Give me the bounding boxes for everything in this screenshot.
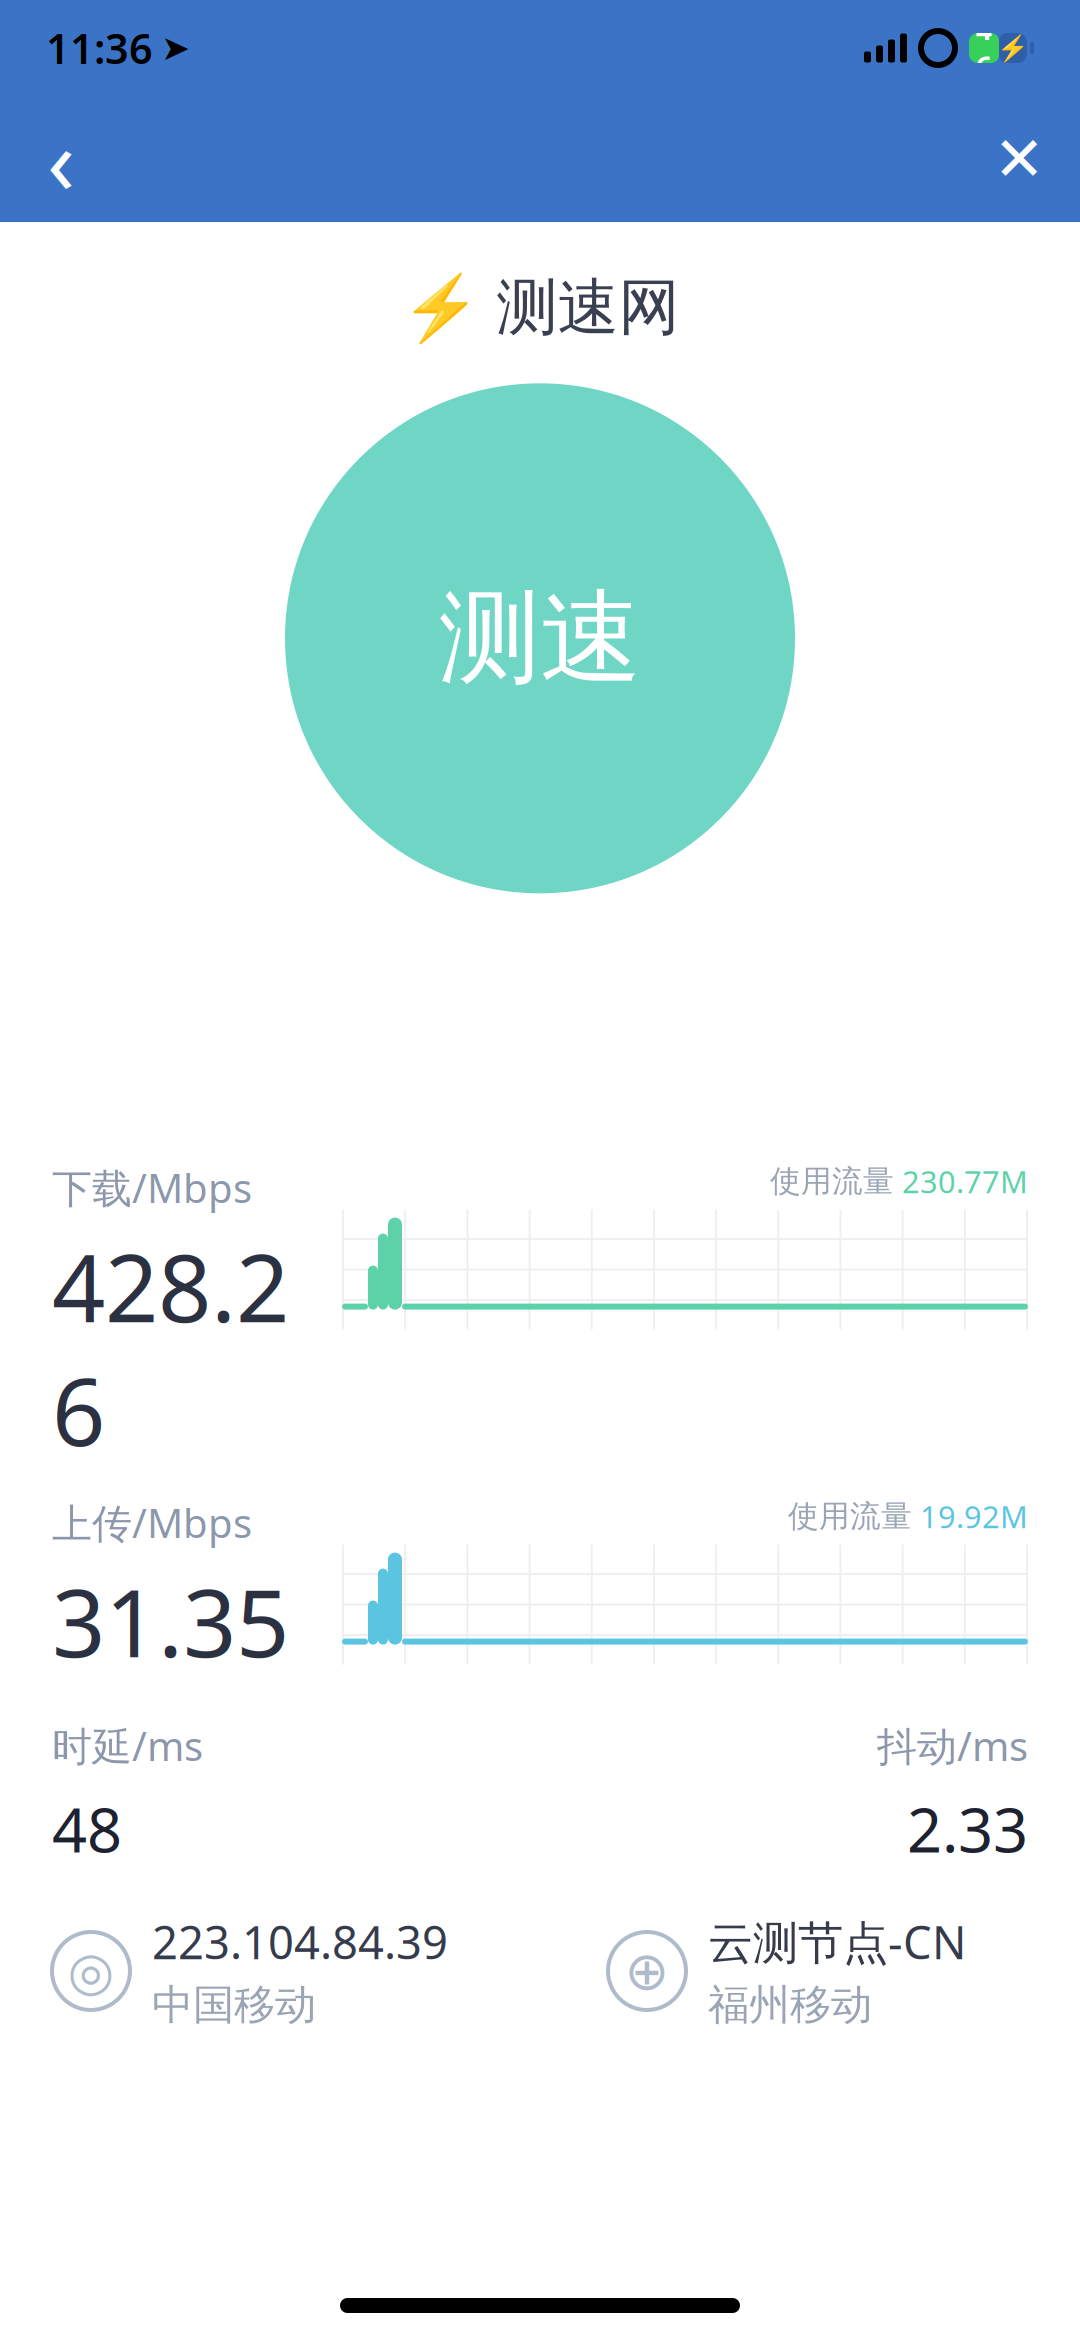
staticText: ⚡ — [400, 271, 480, 344]
staticText: 31.35 — [52, 1559, 289, 1683]
staticText: 11:36 — [46, 21, 153, 75]
button[interactable]: Back — [16, 114, 106, 204]
staticText: 时延/ms — [52, 1719, 203, 1772]
staticText: ◎ — [67, 1941, 114, 2001]
staticText: ➤ — [161, 28, 190, 68]
button[interactable]: Close — [974, 114, 1064, 204]
staticText: 下载/Mbps — [52, 1161, 252, 1214]
staticText: 抖动/ms — [877, 1719, 1028, 1772]
staticText: ✕ — [993, 124, 1044, 194]
button[interactable]: ◎ — [52, 1911, 512, 2030]
staticText: ⚡ — [997, 33, 1029, 62]
staticText: 使用流量 — [788, 1497, 912, 1535]
staticText: 使用流量 — [770, 1162, 894, 1200]
staticText: ⊕ — [624, 1941, 669, 2001]
staticText: 福州移动 — [708, 1980, 872, 2030]
button[interactable]: Start speed test — [285, 383, 795, 893]
staticText: 上传/Mbps — [52, 1496, 252, 1549]
button[interactable]: ⊕ — [608, 1911, 1028, 2030]
staticText: 19.92M — [920, 1496, 1028, 1537]
staticText: 云测节点-CN — [708, 1911, 966, 1972]
staticText: 428.26 — [52, 1224, 289, 1472]
staticText: 48 — [52, 1788, 122, 1869]
staticText: 230.77M — [902, 1161, 1028, 1202]
staticText: 2.33 — [907, 1788, 1028, 1869]
staticText: 223.104.84.39 — [152, 1911, 448, 1972]
staticText: 46 — [976, 11, 992, 85]
staticText: 中国移动 — [152, 1980, 316, 2030]
staticText: ‹ — [47, 99, 75, 219]
staticText: 测速 — [439, 576, 641, 701]
staticText: 测速网 — [496, 270, 679, 345]
